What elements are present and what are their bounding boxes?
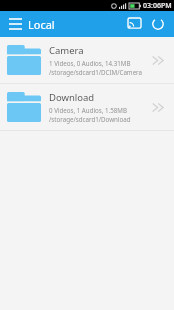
button[interactable]: Open Download <box>148 97 168 117</box>
staticText: 03:06PM <box>143 1 172 11</box>
staticText: /storage/sdcard1/DCIM/Camera <box>49 68 143 76</box>
button[interactable]: Open navigation menu <box>4 13 26 35</box>
staticText: Download <box>49 91 95 104</box>
staticText: Camera <box>49 44 84 57</box>
button[interactable]: Refresh <box>146 12 170 36</box>
button[interactable]: Download <box>0 84 174 130</box>
staticText: 0 Videos, 1 Audios, 1.58MB <box>49 106 127 114</box>
staticText: Local <box>28 17 55 32</box>
button[interactable]: Cast <box>122 12 146 36</box>
button[interactable]: Open Camera <box>148 50 168 70</box>
staticText: /storage/sdcard1/Download <box>49 115 131 123</box>
staticText: 1 Videos, 0 Audios, 14.31MB <box>49 59 131 67</box>
button[interactable]: Camera <box>0 37 174 83</box>
